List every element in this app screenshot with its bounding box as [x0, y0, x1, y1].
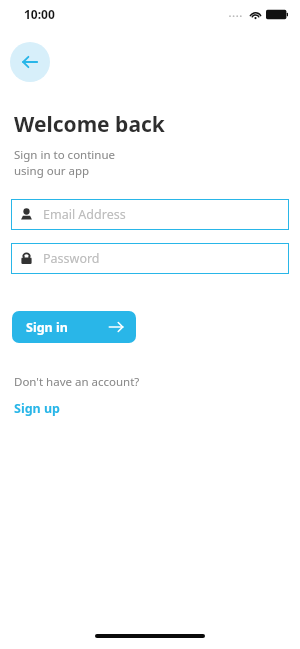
button[interactable]: Sign in	[12, 311, 136, 343]
button[interactable]: Password	[11, 243, 289, 274]
staticText: Sign in to continue using our app	[14, 147, 116, 178]
staticText: Email Address	[43, 206, 126, 223]
button[interactable]: Sign up	[14, 400, 60, 417]
button[interactable]: Email Address	[11, 199, 289, 230]
staticText: Sign in	[26, 319, 68, 336]
staticText: 10:00	[24, 6, 55, 22]
staticText: Password	[43, 250, 100, 267]
staticText: Welcome back	[14, 110, 165, 139]
button[interactable]: Back	[10, 42, 50, 82]
staticText: Sign up	[14, 400, 60, 417]
staticText: Don't have an account?	[14, 374, 140, 390]
